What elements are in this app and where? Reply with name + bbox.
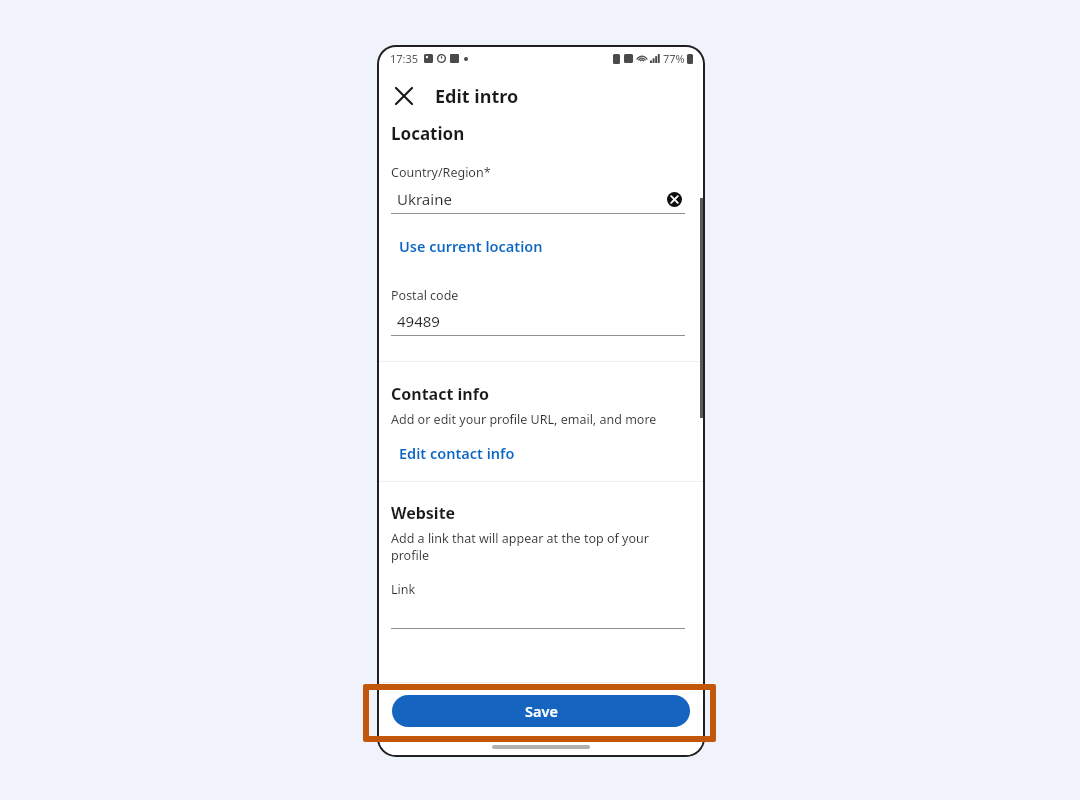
button[interactable]: Save — [392, 695, 690, 727]
staticText: Ukraine — [397, 189, 663, 209]
button[interactable]: Use current location — [393, 234, 549, 258]
button[interactable]: Edit contact info — [393, 441, 521, 465]
staticText: Add a link that will appear at the top o… — [391, 530, 681, 564]
staticText: Link — [391, 581, 416, 598]
button[interactable]: Clear country — [663, 188, 685, 210]
staticText: Add or edit your profile URL, email, and… — [391, 411, 657, 428]
staticText: 77% — [663, 51, 685, 66]
button[interactable]: Close — [386, 78, 422, 114]
staticText: 49489 — [397, 311, 440, 331]
staticText: Edit intro — [435, 84, 519, 109]
staticText: Postal code — [391, 287, 459, 304]
staticText: Contact info — [391, 383, 489, 405]
staticText: Location — [391, 122, 465, 145]
staticText: Website — [391, 502, 456, 524]
staticText: 17:35 — [390, 51, 419, 66]
staticText: Country/Region* — [391, 164, 491, 181]
staticText: Save — [525, 701, 558, 721]
